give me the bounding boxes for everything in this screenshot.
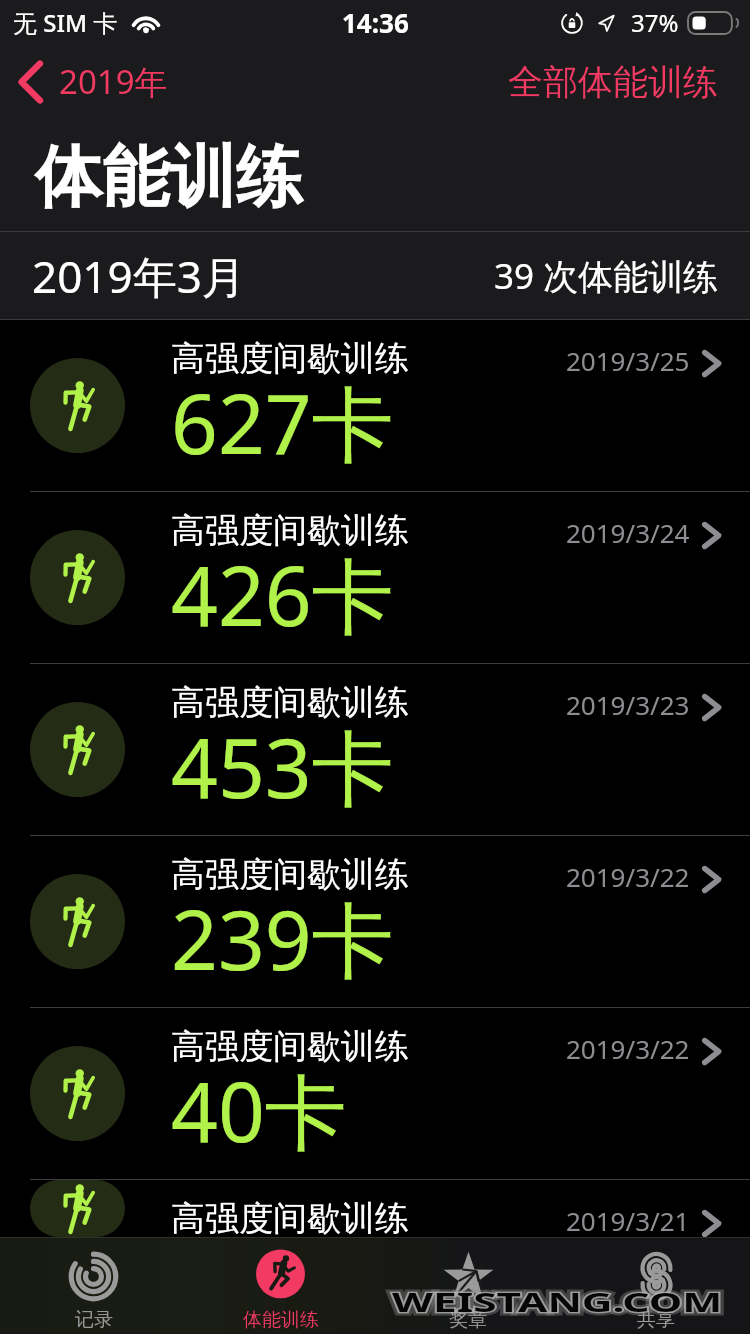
button[interactable]: 高强度间歇训练: [0, 320, 750, 491]
staticText: 记录: [75, 1308, 113, 1332]
staticText: 高强度间歇训练: [171, 509, 409, 552]
button[interactable]: 高强度间歇训练: [0, 1008, 750, 1179]
staticText: 高强度间歇训练: [171, 1197, 409, 1237]
button[interactable]: 记录: [0, 1237, 187, 1334]
staticText: 共享: [637, 1308, 675, 1332]
button[interactable]: 奖章: [374, 1237, 562, 1334]
staticText: 2019年: [59, 59, 168, 104]
staticText: 体能训练: [243, 1308, 319, 1332]
staticText: 体能训练: [35, 135, 303, 219]
staticText: WEISTANG.COM: [392, 1283, 723, 1320]
button[interactable]: 高强度间歇训练: [0, 836, 750, 1007]
staticText: 2019/3/24: [566, 515, 690, 550]
staticText: 2019/3/23: [566, 687, 690, 722]
staticText: 2019/3/22: [566, 859, 690, 894]
staticText: 高强度间歇训练: [171, 1025, 409, 1068]
button[interactable]: 高强度间歇训练: [0, 492, 750, 663]
staticText: 40卡: [171, 1054, 347, 1166]
staticText: 627卡: [171, 366, 394, 478]
button[interactable]: 体能训练: [187, 1237, 374, 1334]
staticText: 2019年3月: [32, 246, 246, 306]
staticText: WEISTANG.COM: [392, 1283, 723, 1320]
button[interactable]: 共享: [562, 1237, 750, 1334]
staticText: 239卡: [171, 882, 394, 994]
staticText: 奖章: [449, 1308, 487, 1332]
staticText: WEISTANG.COM: [392, 1283, 723, 1320]
button[interactable]: 2019年: [0, 51, 182, 112]
staticText: 39 次体能训练: [494, 252, 719, 300]
staticText: 14:36: [342, 5, 409, 40]
button[interactable]: 全部体能训练: [490, 52, 750, 112]
staticText: 无 SIM 卡: [13, 6, 118, 39]
staticText: 426卡: [171, 538, 394, 650]
button[interactable]: 高强度间歇训练: [0, 664, 750, 835]
staticText: 高强度间歇训练: [171, 681, 409, 724]
button[interactable]: 高强度间歇训练: [0, 1180, 750, 1237]
staticText: 2019/3/21: [566, 1203, 690, 1237]
staticText: 2019/3/25: [566, 343, 690, 378]
staticText: 453卡: [171, 710, 394, 822]
staticText: 全部体能训练: [508, 60, 718, 104]
staticText: 高强度间歇训练: [171, 853, 409, 896]
staticText: 37%: [631, 6, 679, 39]
staticText: 高强度间歇训练: [171, 337, 409, 380]
staticText: 510卡: [171, 1226, 394, 1237]
staticText: 2019/3/22: [566, 1031, 690, 1066]
